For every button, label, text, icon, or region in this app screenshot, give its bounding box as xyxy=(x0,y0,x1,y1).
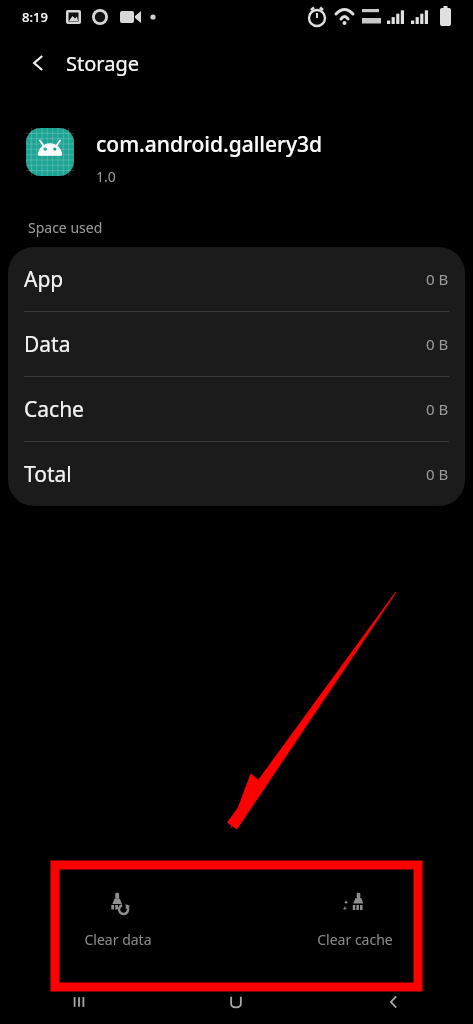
staticText: Storage xyxy=(66,50,139,77)
button[interactable]: Total xyxy=(8,442,465,506)
button[interactable]: Data xyxy=(8,312,465,377)
button[interactable]: Home xyxy=(157,979,315,1024)
staticText: Space used xyxy=(28,218,103,237)
button[interactable]: Back xyxy=(315,979,473,1024)
staticText: 0 B xyxy=(426,269,449,289)
staticText: App xyxy=(24,265,64,294)
button[interactable]: Clear data xyxy=(0,861,236,979)
button[interactable]: Cache xyxy=(8,377,465,442)
staticText: 1.0 xyxy=(96,167,116,186)
staticText: Data xyxy=(24,330,71,359)
staticText: Total xyxy=(24,460,72,489)
staticText: Clear cache xyxy=(317,930,393,949)
staticText: 0 B xyxy=(426,399,449,419)
staticText: Cache xyxy=(24,395,84,424)
staticText: 0 B xyxy=(426,334,449,354)
staticText: 0 B xyxy=(426,464,449,484)
staticText: com.android.gallery3d xyxy=(96,130,323,159)
button[interactable]: Clear cache xyxy=(236,861,473,979)
staticText: 8:19 xyxy=(22,8,48,26)
staticText: Clear data xyxy=(84,930,152,949)
button[interactable]: Back xyxy=(14,39,62,87)
button[interactable]: Recents xyxy=(0,979,157,1024)
button[interactable]: App xyxy=(8,247,465,312)
